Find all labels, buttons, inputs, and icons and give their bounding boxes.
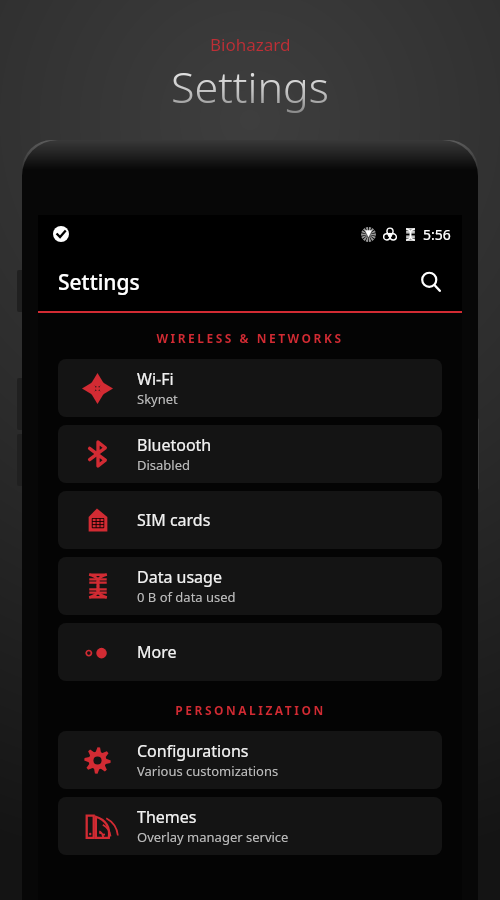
staticText: 0 B of data used [137,588,236,606]
staticText: SIM cards [137,509,211,531]
staticText: Wi-Fi [137,368,174,390]
button[interactable]: Bluetooth [58,425,442,483]
staticText: Biohazard [210,33,291,56]
button[interactable]: Data usage [58,557,442,615]
staticText: Bluetooth [137,434,212,456]
button[interactable]: Wi-Fi [58,359,442,417]
button[interactable]: Themes [58,797,442,855]
staticText: Disabled [137,456,191,474]
staticText: PERSONALIZATION [175,702,326,718]
staticText: Overlay manager service [137,828,289,846]
staticText: Skynet [137,390,178,408]
staticText: Themes [137,806,197,828]
button[interactable]: SIM cards [58,491,442,549]
button[interactable]: Configurations [58,731,442,789]
staticText: Configurations [137,740,249,762]
staticText: More [137,641,177,663]
staticText: Settings [171,57,329,116]
staticText: Data usage [137,566,222,588]
staticText: WIRELESS & NETWORKS [156,330,344,346]
button[interactable]: Search [408,259,454,305]
staticText: Settings [58,268,140,297]
staticText: Various customizations [137,762,279,780]
staticText: 5:56 [423,225,451,244]
button[interactable]: More [58,623,442,681]
